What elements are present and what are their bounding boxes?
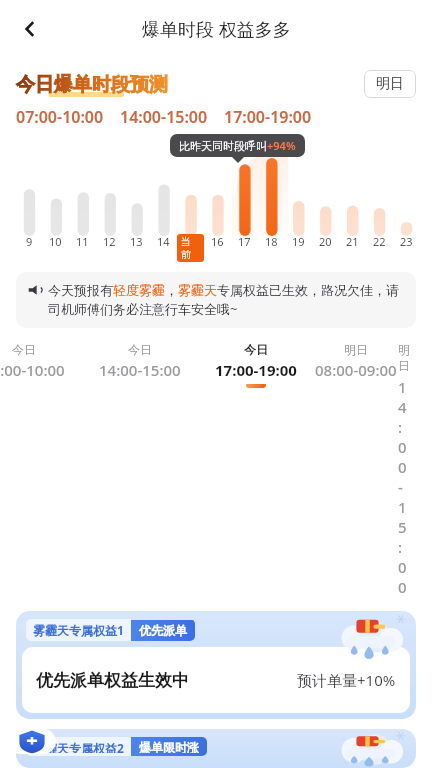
staticText: 21	[346, 234, 359, 249]
staticText: 10	[49, 234, 62, 249]
staticText: 07:00-10:00	[16, 106, 104, 128]
staticText: 爆单时段 权益多多	[142, 17, 291, 42]
button[interactable]: 明日	[364, 70, 416, 98]
staticText: 11	[76, 234, 89, 249]
staticText: 20	[319, 234, 332, 249]
staticText: 19	[292, 234, 305, 249]
staticText: 爆单限时涨	[139, 740, 199, 753]
staticText: 明日	[344, 342, 368, 357]
staticText: 16	[211, 234, 224, 249]
staticText: 13	[130, 234, 143, 249]
staticText: 14:00-15:00	[120, 106, 208, 128]
staticText: 预计单量+10%	[297, 670, 396, 690]
staticText: 比昨天同时段呼叫+94%	[179, 138, 296, 153]
button[interactable]: 今日	[198, 342, 314, 388]
staticText: 9	[26, 234, 33, 249]
staticText: 今天预报有轻度雾霾，雾霾天专属权益已生效，路况欠佳，请司机师傅们务必注意行车安全…	[48, 282, 404, 318]
button[interactable]: 明日	[314, 342, 398, 384]
staticText: 14:00-15:00	[99, 360, 181, 380]
button[interactable]: 今日	[0, 342, 82, 384]
staticText: 22	[373, 234, 386, 249]
staticText: 明日	[376, 75, 404, 93]
staticText: 23	[400, 234, 413, 249]
staticText: 雾霾天专属权益2	[33, 740, 124, 753]
staticText: 18	[265, 234, 278, 249]
staticText: 07:00-10:00	[0, 360, 65, 380]
staticText: 08:00-09:00	[315, 360, 397, 380]
staticText: 12	[103, 234, 116, 249]
staticText: 17:00-19:00	[215, 360, 297, 380]
staticText: 今日	[12, 342, 36, 357]
staticText: 优先派单	[139, 623, 187, 638]
staticText: 今日	[128, 342, 152, 357]
staticText: 今日爆单时段预测	[16, 73, 168, 97]
staticText: 14	[157, 234, 170, 249]
button[interactable]: 雾霾天专属权益1	[16, 611, 416, 719]
button[interactable]: 今日	[82, 342, 198, 384]
staticText: 17	[238, 234, 251, 249]
staticText: 当前	[181, 235, 200, 261]
button[interactable]: 返回	[8, 7, 52, 51]
staticText: 雾霾天专属权益1	[33, 622, 124, 638]
button[interactable]: 雾霾天专属权益2	[16, 729, 416, 768]
other: 保障	[8, 729, 56, 754]
staticText: 今日	[244, 342, 268, 357]
staticText: 优先派单权益生效中	[36, 670, 189, 691]
staticText: 17:00-19:00	[224, 106, 312, 128]
